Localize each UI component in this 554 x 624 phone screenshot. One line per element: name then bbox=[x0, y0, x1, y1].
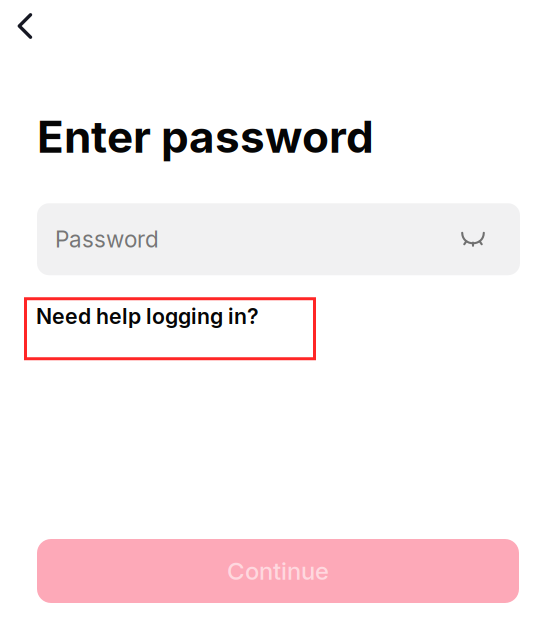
button[interactable]: Continue bbox=[37, 539, 519, 603]
button[interactable]: Show password bbox=[451, 217, 495, 261]
button[interactable]: Back bbox=[3, 4, 47, 48]
staticText: Enter password bbox=[37, 110, 374, 163]
staticText: Continue bbox=[227, 556, 329, 585]
button[interactable]: Need help logging in? bbox=[24, 297, 315, 360]
staticText: Need help logging in? bbox=[36, 303, 259, 329]
staticText: Password bbox=[55, 225, 159, 253]
